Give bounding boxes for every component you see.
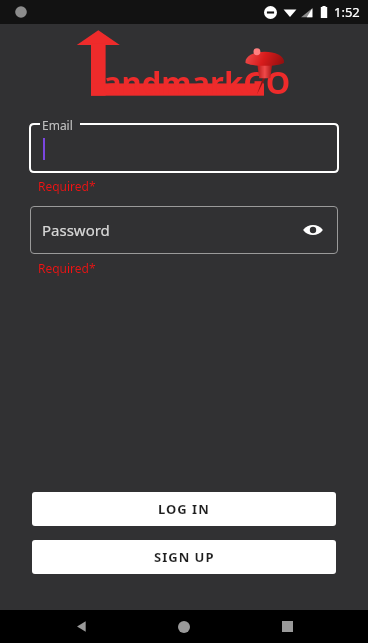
staticText: Required*	[38, 260, 96, 276]
staticText: LOG IN	[158, 500, 210, 518]
button[interactable]: Password	[30, 206, 338, 254]
staticText: Password	[42, 220, 110, 240]
button[interactable]: Back	[59, 610, 103, 643]
button[interactable]: SIGN UP	[32, 540, 336, 574]
staticText: 1:52	[334, 3, 360, 21]
button[interactable]: Show password	[300, 217, 326, 243]
staticText: Email	[42, 117, 73, 133]
staticText: Required*	[38, 178, 96, 194]
button[interactable]: Recent apps	[265, 610, 309, 643]
staticText: andmarkGO	[103, 61, 291, 103]
button[interactable]: Home	[162, 610, 206, 643]
button[interactable]: Email	[30, 116, 338, 172]
staticText: SIGN UP	[154, 548, 215, 566]
button[interactable]: LOG IN	[32, 492, 336, 526]
